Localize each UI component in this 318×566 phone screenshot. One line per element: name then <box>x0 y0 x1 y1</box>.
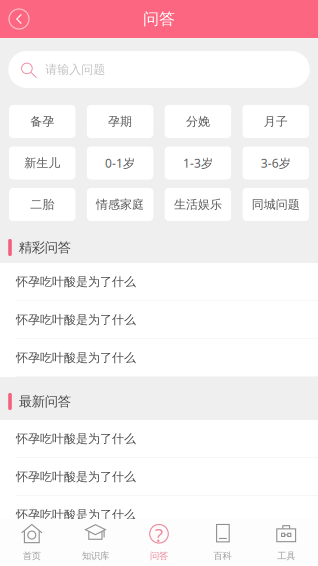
staticText: 0-1岁 <box>105 155 135 171</box>
staticText: 生活娱乐 <box>174 197 222 212</box>
staticText: 备孕 <box>30 114 54 129</box>
button[interactable]: 请输入问题 <box>8 51 310 88</box>
staticText: 二胎 <box>30 197 54 212</box>
staticText: 问答 <box>150 550 168 562</box>
button[interactable]: 1-3岁 <box>165 146 231 179</box>
staticText: 精彩问答 <box>19 239 71 256</box>
staticText: 工具 <box>277 550 295 562</box>
button[interactable]: 工具 <box>254 519 318 566</box>
button[interactable]: ? <box>127 519 191 566</box>
staticText: 问答 <box>143 9 175 29</box>
button[interactable]: Back <box>0 9 29 29</box>
staticText: 情感家庭 <box>96 197 144 212</box>
button[interactable]: 怀孕吃叶酸是为了什么 <box>0 496 318 534</box>
button[interactable]: 二胎 <box>9 188 75 221</box>
button[interactable]: 生活娱乐 <box>165 188 231 221</box>
staticText: 知识库 <box>82 550 109 562</box>
button[interactable]: 新生儿 <box>9 146 75 179</box>
button[interactable]: 怀孕吃叶酸是为了什么 <box>0 458 318 496</box>
button[interactable]: 0-1岁 <box>87 146 153 179</box>
staticText: 分娩 <box>186 114 210 129</box>
button[interactable]: 孕期 <box>87 105 153 138</box>
button[interactable]: 情感家庭 <box>87 188 153 221</box>
staticText: ? <box>155 522 163 547</box>
staticText: 最新问答 <box>19 393 71 410</box>
button[interactable]: 怀孕吃叶酸是为了什么 <box>0 339 318 377</box>
button[interactable]: 怀孕吃叶酸是为了什么 <box>0 301 318 339</box>
staticText: 怀孕吃叶酸是为了什么 <box>16 350 136 365</box>
button[interactable]: 怀孕吃叶酸是为了什么 <box>0 420 318 458</box>
staticText: 3-6岁 <box>261 155 291 171</box>
staticText: 同城问题 <box>252 197 300 212</box>
button[interactable]: 百科 <box>191 519 254 566</box>
staticText: 怀孕吃叶酸是为了什么 <box>16 312 136 327</box>
button[interactable]: 3-6岁 <box>243 146 309 179</box>
staticText: 孕期 <box>108 114 132 129</box>
staticText: 怀孕吃叶酸是为了什么 <box>16 431 136 446</box>
button[interactable]: 备孕 <box>9 105 75 138</box>
staticText: 月子 <box>264 114 288 129</box>
button[interactable]: 怀孕吃叶酸是为了什么 <box>0 263 318 301</box>
button[interactable]: 月子 <box>243 105 309 138</box>
button[interactable]: 同城问题 <box>243 188 309 221</box>
staticText: 怀孕吃叶酸是为了什么 <box>16 507 136 522</box>
staticText: 怀孕吃叶酸是为了什么 <box>16 469 136 484</box>
button[interactable]: 知识库 <box>64 519 127 566</box>
staticText: 1-3岁 <box>183 155 213 171</box>
staticText: 新生儿 <box>24 156 60 170</box>
button[interactable]: 首页 <box>0 519 64 566</box>
staticText: 请输入问题 <box>45 62 105 77</box>
button[interactable]: 分娩 <box>165 105 231 138</box>
staticText: 百科 <box>214 550 232 562</box>
staticText: 首页 <box>23 550 41 562</box>
staticText: 怀孕吃叶酸是为了什么 <box>16 274 136 289</box>
